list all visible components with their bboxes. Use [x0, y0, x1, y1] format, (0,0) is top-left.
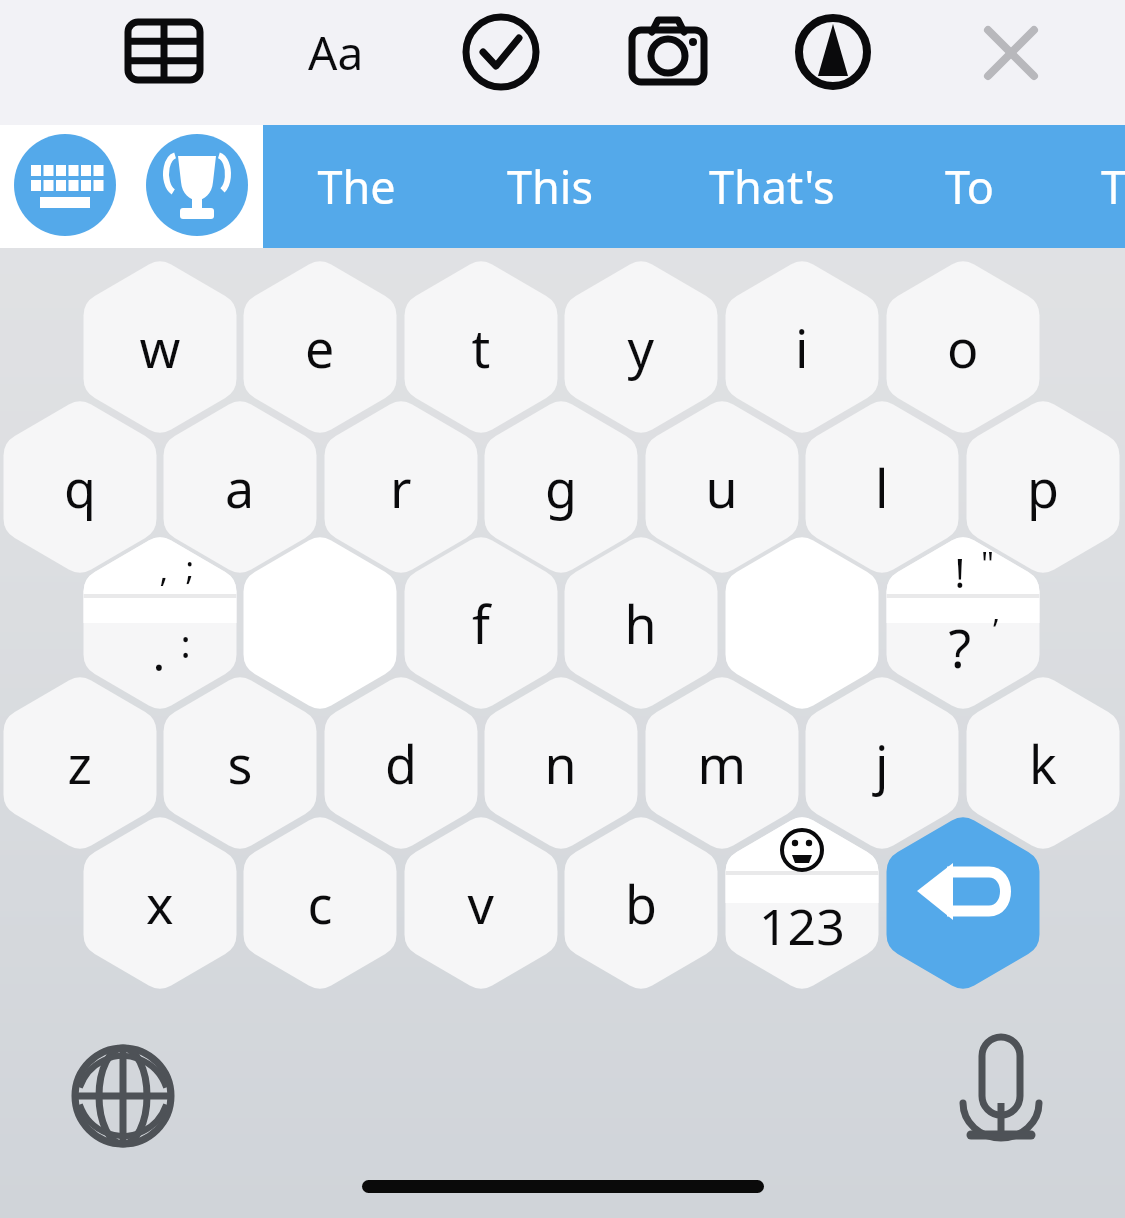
button[interactable]: [160, 394, 320, 580]
button[interactable]: [642, 394, 802, 580]
button[interactable]: [722, 810, 882, 996]
button[interactable]: Camera: [622, 8, 714, 100]
button[interactable]: [802, 670, 962, 856]
button[interactable]: [270, 126, 446, 248]
button[interactable]: Keyboard settings: [14, 134, 116, 236]
button[interactable]: [722, 254, 882, 440]
button[interactable]: [481, 670, 641, 856]
button[interactable]: [401, 810, 561, 996]
button[interactable]: [321, 670, 481, 856]
button[interactable]: [401, 254, 561, 440]
button[interactable]: Voice input: [948, 1043, 1054, 1149]
button[interactable]: [883, 254, 1043, 440]
button[interactable]: Markup: [787, 8, 879, 100]
button[interactable]: [802, 394, 962, 580]
button[interactable]: [80, 254, 240, 440]
button[interactable]: [561, 530, 721, 716]
button[interactable]: [883, 530, 1043, 716]
button[interactable]: [561, 254, 721, 440]
button[interactable]: Change keyboard language: [70, 1043, 176, 1149]
button[interactable]: [401, 530, 561, 716]
button[interactable]: [900, 126, 1044, 248]
button[interactable]: [240, 810, 400, 996]
button[interactable]: [561, 810, 721, 996]
button[interactable]: [321, 394, 481, 580]
button[interactable]: [963, 394, 1123, 580]
button[interactable]: Achievements: [146, 134, 248, 236]
button[interactable]: [642, 670, 802, 856]
button[interactable]: [80, 810, 240, 996]
button[interactable]: [481, 394, 641, 580]
button[interactable]: [672, 126, 872, 248]
button[interactable]: [883, 810, 1043, 996]
button[interactable]: [0, 670, 160, 856]
button[interactable]: Close: [965, 8, 1057, 100]
button[interactable]: Text format: [292, 8, 382, 100]
button[interactable]: [0, 394, 160, 580]
button[interactable]: [462, 126, 638, 248]
button[interactable]: [160, 670, 320, 856]
button[interactable]: [963, 670, 1123, 856]
button[interactable]: Checklist: [456, 8, 546, 100]
button[interactable]: [80, 530, 240, 716]
button[interactable]: [240, 254, 400, 440]
button[interactable]: [722, 530, 882, 716]
button[interactable]: [240, 530, 400, 716]
button[interactable]: Table: [120, 8, 210, 100]
